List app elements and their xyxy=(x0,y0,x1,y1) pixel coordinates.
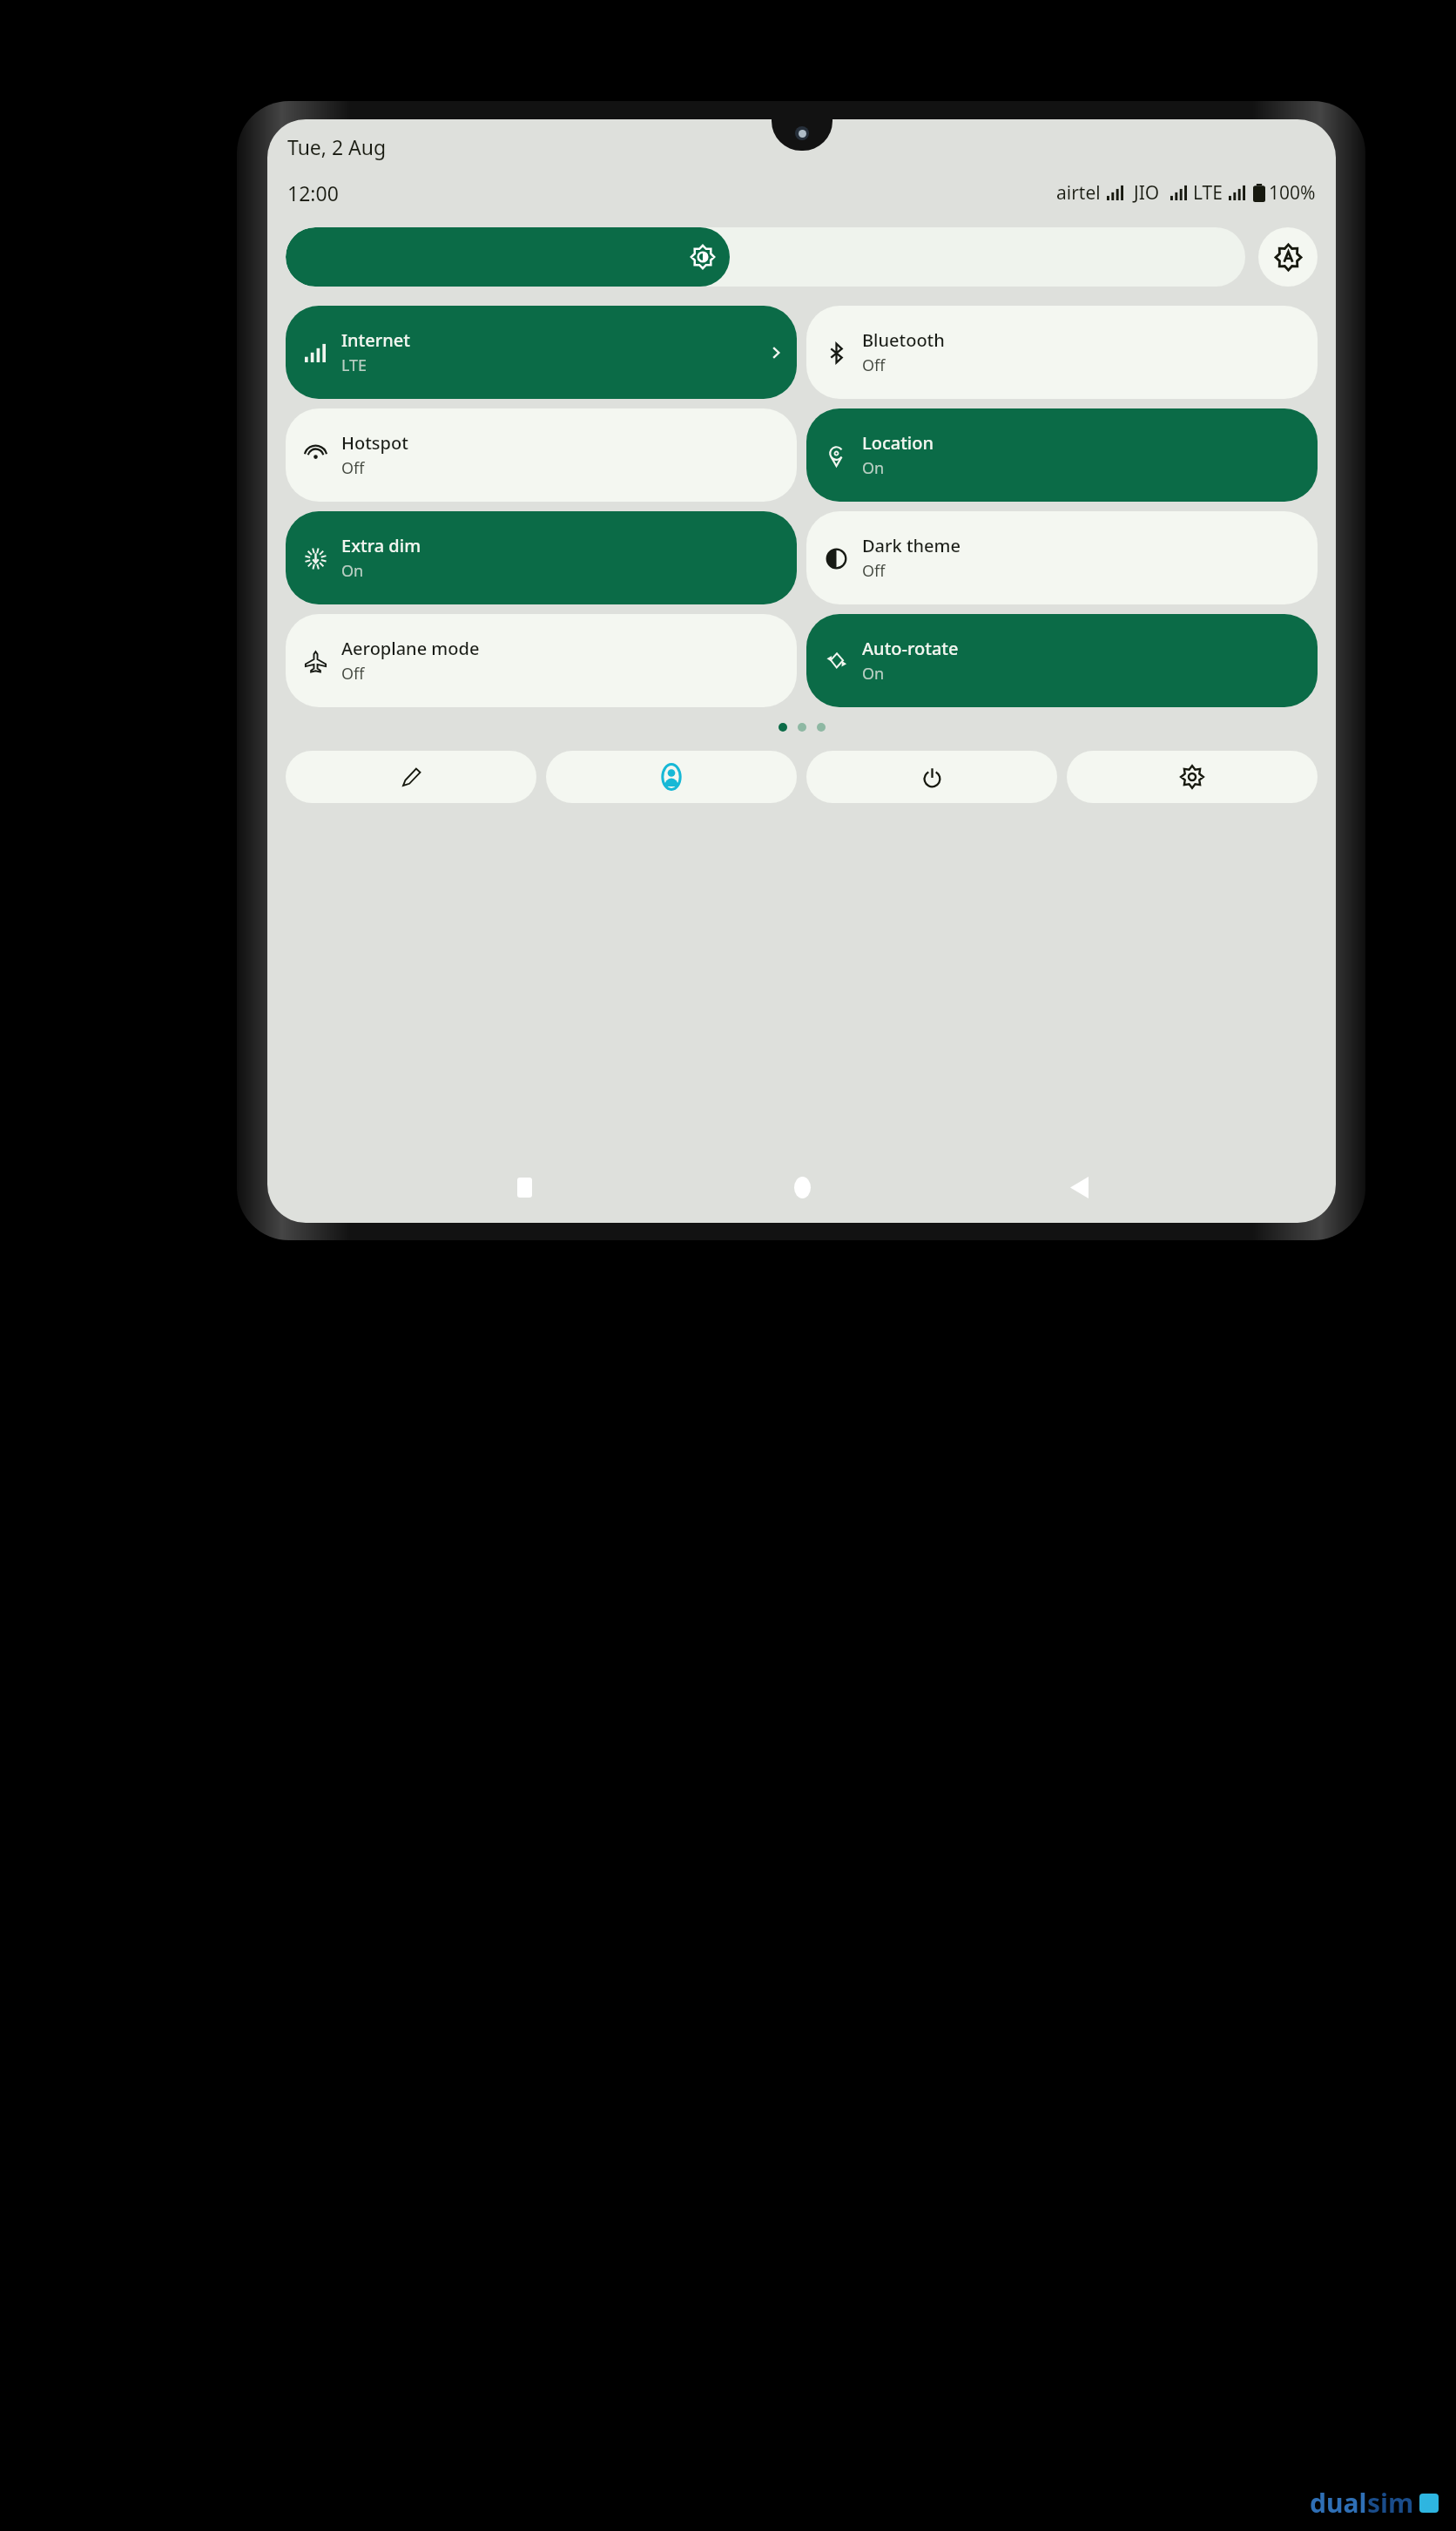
staticText: Off xyxy=(862,354,886,376)
button[interactable]: Dark theme xyxy=(806,511,1318,604)
staticText: dual xyxy=(1310,2485,1367,2521)
button[interactable]: Bluetooth xyxy=(806,306,1318,399)
staticText: On xyxy=(341,560,364,582)
staticText: Off xyxy=(341,663,365,685)
button[interactable]: Home xyxy=(782,1167,822,1207)
staticText: Aeroplane mode xyxy=(341,637,480,660)
button[interactable]: Hotspot xyxy=(286,408,797,502)
button[interactable]: Extra dim xyxy=(286,511,797,604)
staticText: 100% xyxy=(1269,180,1316,206)
button[interactable]: Location xyxy=(806,408,1318,502)
staticText: Extra dim xyxy=(341,534,421,557)
staticText: On xyxy=(862,457,885,479)
staticText: Auto-rotate xyxy=(862,637,959,660)
button[interactable]: Power xyxy=(806,751,1057,803)
staticText: Internet xyxy=(341,328,410,352)
button[interactable]: Internet xyxy=(286,306,797,399)
button[interactable]: Back xyxy=(1059,1167,1099,1207)
staticText: Off xyxy=(862,560,886,582)
button[interactable]: Brightness slider xyxy=(286,227,1245,287)
button[interactable]: Recents xyxy=(504,1167,544,1207)
staticText: Dark theme xyxy=(862,534,961,557)
button[interactable]: Auto brightness xyxy=(1258,227,1318,287)
staticText: Location xyxy=(862,431,934,455)
staticText: Off xyxy=(341,457,365,479)
button[interactable]: User profile xyxy=(546,751,797,803)
staticText: Bluetooth xyxy=(862,328,945,352)
staticText: JIO xyxy=(1134,180,1160,206)
staticText: On xyxy=(862,663,885,685)
staticText: sim xyxy=(1367,2485,1414,2521)
staticText: Hotspot xyxy=(341,431,408,455)
staticText: airtel xyxy=(1056,180,1101,206)
staticText: LTE xyxy=(1193,180,1223,206)
staticText: 12:00 xyxy=(287,179,339,206)
button[interactable]: Settings xyxy=(1067,751,1318,803)
staticText: LTE xyxy=(341,354,367,376)
button[interactable]: Edit tiles xyxy=(286,751,536,803)
button[interactable]: Aeroplane mode xyxy=(286,614,797,707)
button[interactable]: Auto-rotate xyxy=(806,614,1318,707)
staticText: Tue, 2 Aug xyxy=(287,133,387,160)
